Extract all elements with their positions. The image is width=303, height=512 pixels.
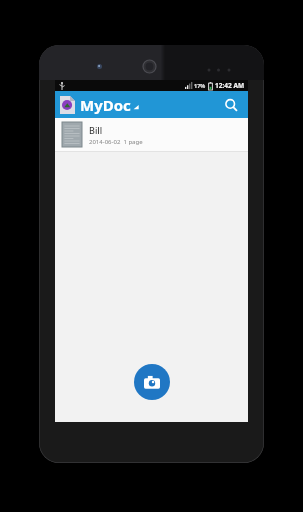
staticText: Bill xyxy=(89,124,103,136)
staticText: 17% xyxy=(194,82,206,89)
staticText: 2014-06-02 1 page xyxy=(89,138,143,146)
staticText: 12:42 AM xyxy=(215,81,245,90)
staticText: MyDoc xyxy=(80,95,131,115)
button[interactable]: Search xyxy=(220,94,242,116)
button[interactable]: MyDoc xyxy=(60,95,139,115)
button[interactable]: Take photo xyxy=(134,364,170,400)
button[interactable]: Bill xyxy=(55,118,248,151)
